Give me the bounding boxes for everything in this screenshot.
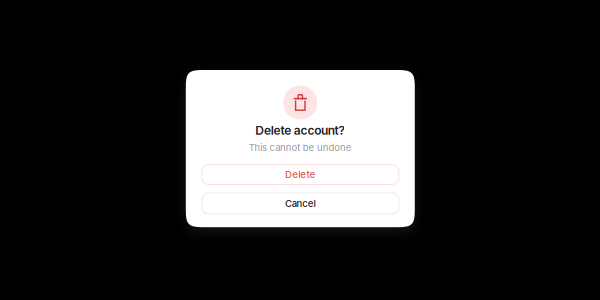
staticText: Cancel — [285, 198, 315, 209]
staticText: Delete — [285, 169, 316, 180]
staticText: Delete account? — [255, 123, 345, 138]
staticText: This cannot be undone — [249, 142, 352, 153]
button[interactable]: Delete — [202, 164, 399, 184]
button[interactable]: Cancel — [202, 193, 399, 214]
